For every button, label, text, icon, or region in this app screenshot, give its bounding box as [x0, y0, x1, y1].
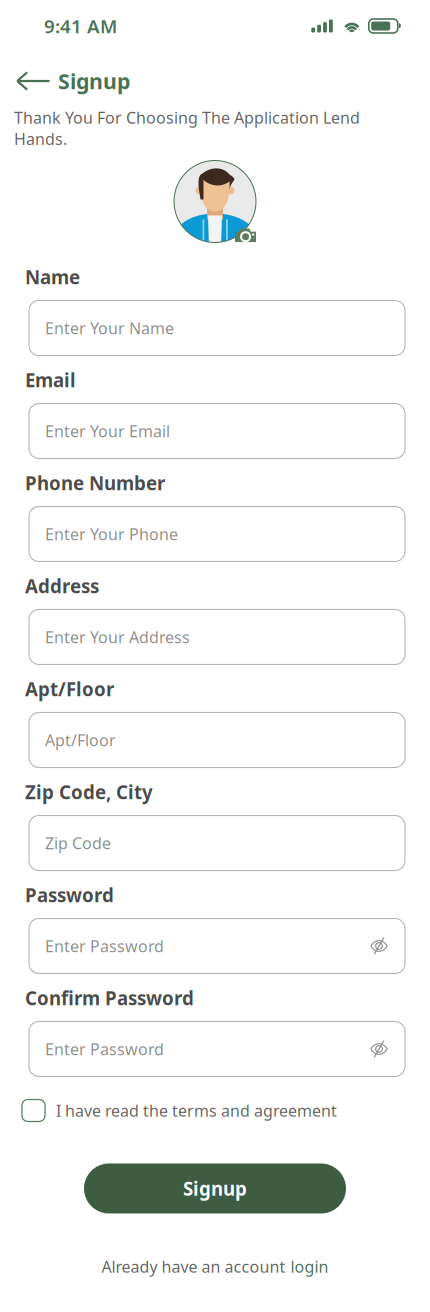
button[interactable]: Enter Password — [25, 1021, 405, 1076]
staticText: I have read the terms and agreement — [56, 1100, 337, 1121]
staticText: Address — [25, 574, 99, 598]
staticText: Name — [25, 265, 80, 289]
staticText: Confirm Password — [25, 986, 194, 1010]
button[interactable]: Enter Your Phone — [25, 506, 405, 561]
button[interactable]: Already have an account — [101, 1254, 328, 1278]
staticText: Zip Code — [45, 832, 111, 854]
button[interactable]: Enter Your Email — [25, 403, 405, 458]
button[interactable]: Change profile photo — [174, 160, 256, 242]
button[interactable]: Enter Your Name — [25, 300, 405, 355]
staticText: Thank You For Choosing The Application L… — [14, 107, 360, 149]
button[interactable]: Back — [14, 64, 53, 98]
staticText: Apt/Floor — [25, 677, 114, 701]
staticText: Signup — [58, 67, 130, 95]
staticText: Signup — [183, 1176, 247, 1201]
staticText: Password — [25, 883, 114, 907]
button[interactable]: Zip Code — [25, 815, 405, 870]
staticText: Enter Password — [45, 935, 164, 957]
button[interactable]: Enter Password — [25, 918, 405, 973]
staticText: Phone Number — [25, 471, 165, 495]
button[interactable]: Apt/Floor — [25, 712, 405, 767]
staticText: Enter Your Email — [45, 420, 170, 442]
staticText: Zip Code, City — [25, 780, 153, 804]
button[interactable]: Enter Your Address — [25, 609, 405, 664]
staticText: login — [290, 1256, 328, 1277]
button[interactable]: I have read the terms and agreement — [0, 1096, 430, 1124]
staticText: Enter Your Phone — [45, 523, 178, 545]
staticText: Enter Your Address — [45, 626, 190, 648]
staticText: Already have an account — [101, 1256, 285, 1277]
staticText: Enter Your Name — [45, 317, 174, 339]
staticText: Email — [25, 368, 76, 392]
button[interactable]: Signup — [84, 1163, 346, 1213]
staticText: 9:41 AM — [44, 14, 117, 38]
staticText: Enter Password — [45, 1038, 164, 1060]
staticText: Apt/Floor — [45, 729, 116, 751]
